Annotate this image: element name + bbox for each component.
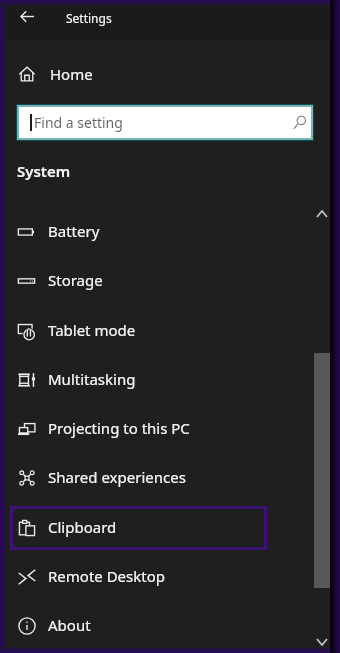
- button[interactable]: Storage: [10, 259, 267, 303]
- staticText: Tablet mode: [48, 320, 136, 340]
- staticText: Multitasking: [48, 369, 136, 389]
- staticText: Settings: [66, 10, 112, 26]
- button[interactable]: Scroll up: [313, 197, 331, 231]
- button[interactable]: Back: [7, 1, 48, 32]
- staticText: Shared experiences: [48, 467, 186, 487]
- button[interactable]: Projecting to this PC: [10, 407, 267, 451]
- staticText: About: [48, 615, 91, 635]
- button[interactable]: Shared experiences: [10, 456, 267, 500]
- button[interactable]: Find a setting: [19, 107, 311, 138]
- button[interactable]: Battery: [10, 210, 267, 254]
- button[interactable]: Multitasking: [10, 358, 267, 402]
- staticText: Storage: [48, 270, 103, 290]
- button[interactable]: About: [10, 604, 267, 648]
- button[interactable]: Tablet mode: [10, 309, 267, 353]
- staticText: Remote Desktop: [48, 566, 165, 586]
- staticText: Find a setting: [34, 113, 123, 132]
- button[interactable]: Home: [0, 52, 340, 98]
- staticText: System: [17, 161, 71, 181]
- staticText: Battery: [48, 221, 100, 241]
- button[interactable]: Remote Desktop: [10, 555, 267, 599]
- button[interactable]: Clipboard: [10, 506, 267, 550]
- button[interactable]: Scroll down: [313, 625, 331, 653]
- staticText: Home: [50, 64, 93, 84]
- staticText: Clipboard: [48, 517, 117, 537]
- staticText: Projecting to this PC: [48, 418, 190, 438]
